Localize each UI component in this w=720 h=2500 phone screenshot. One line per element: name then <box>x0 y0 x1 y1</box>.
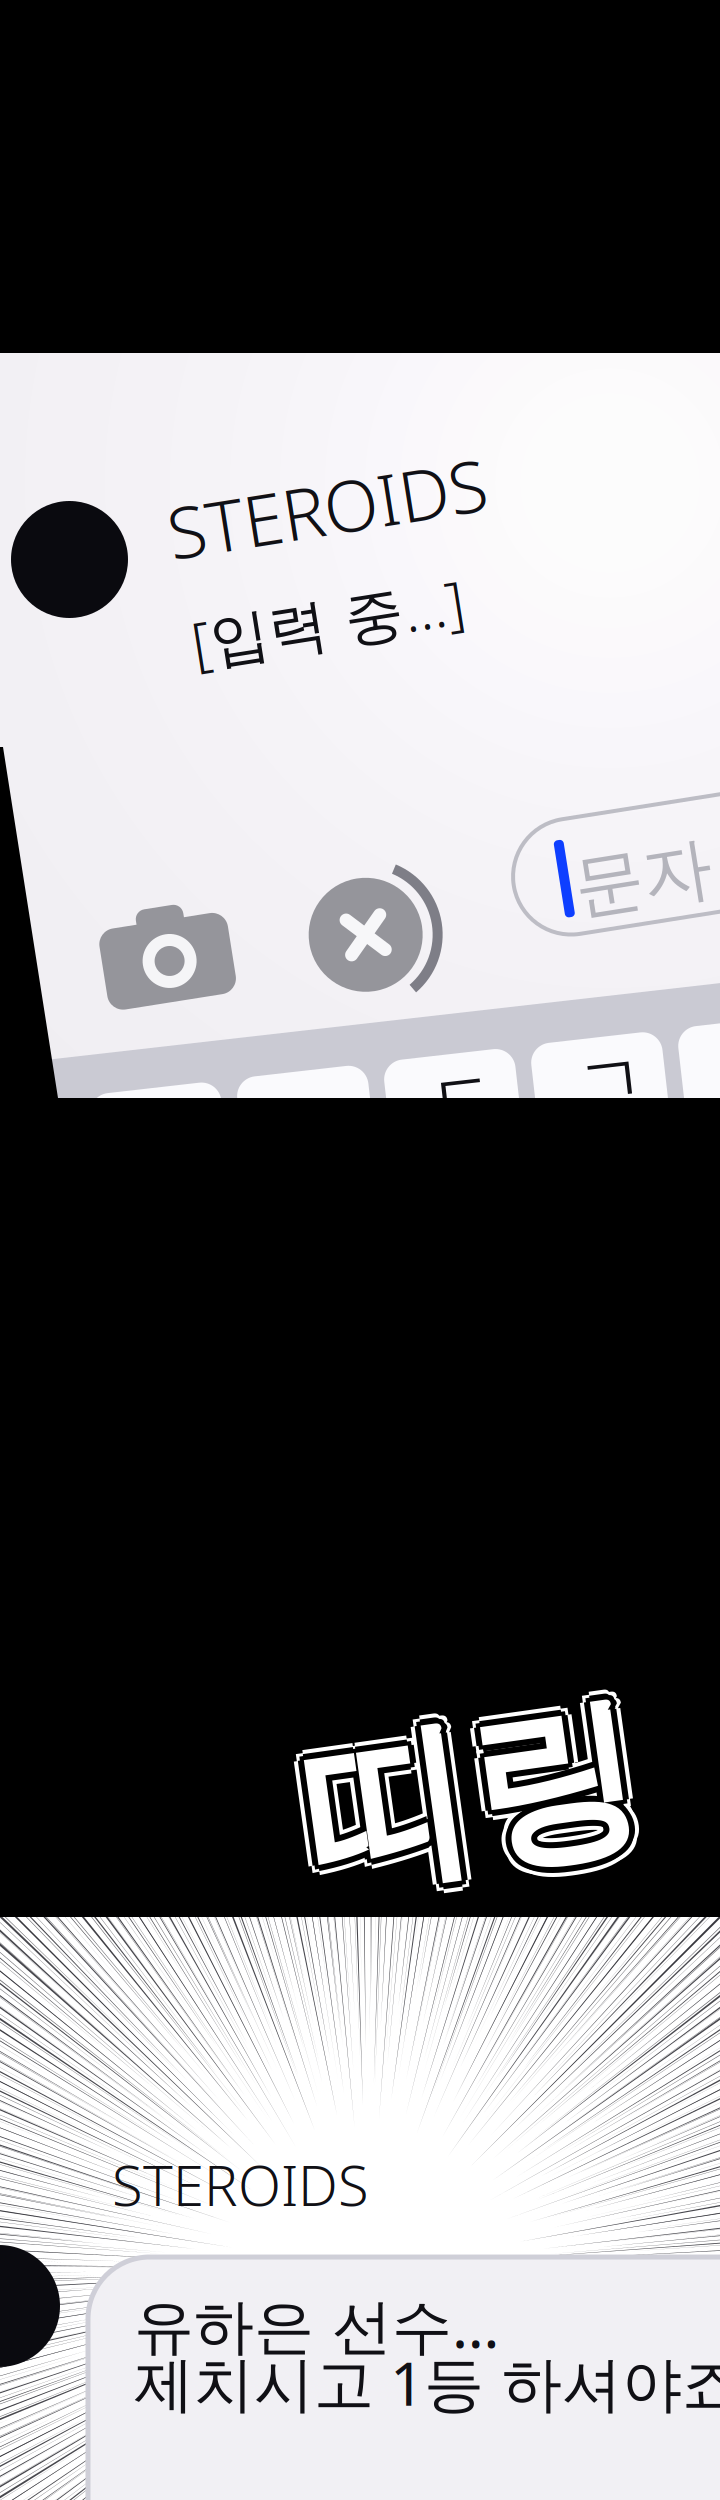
staticText: 문자 메 <box>572 829 720 914</box>
staticText: 띠링 <box>304 1692 646 1902</box>
staticText: ㄱ <box>586 1057 653 1139</box>
staticText: 띠링 <box>306 1688 648 1898</box>
staticText: 띠링 <box>300 1698 642 1908</box>
staticText: 띠링 <box>290 1688 632 1898</box>
staticText: [입력 중…] <box>190 583 466 661</box>
staticText: 띠링 <box>300 1678 642 1888</box>
staticText: 띠링 <box>304 1684 646 1894</box>
staticText: 띠링 <box>300 1694 642 1904</box>
staticText: STEROIDS <box>112 2147 369 2221</box>
staticText: 제치시고 1등 하셔야죠. <box>134 2343 720 2422</box>
staticText: 띠링 <box>300 1688 642 1898</box>
staticText: STEROIDS <box>166 461 489 555</box>
staticText: 유하은 선수… <box>134 2285 499 2365</box>
staticText: 띠링 <box>307 1695 649 1905</box>
staticText: 띠링 <box>307 1681 649 1891</box>
staticText: 띠링 <box>294 1688 636 1898</box>
staticText: 띠링 <box>296 1692 638 1902</box>
staticText: 띠링 <box>300 1682 642 1892</box>
staticText: 띠링 <box>310 1688 652 1898</box>
staticText: 띠링 <box>293 1695 635 1905</box>
staticText: 띠링 <box>296 1684 638 1894</box>
staticText: 띠링 <box>293 1681 635 1891</box>
staticText: ㄷ <box>438 1057 505 1139</box>
